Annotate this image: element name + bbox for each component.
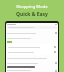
button[interactable] xyxy=(6,61,58,65)
button[interactable] xyxy=(7,66,57,68)
button[interactable] xyxy=(6,36,58,40)
button[interactable] xyxy=(7,41,57,43)
button[interactable] xyxy=(6,56,58,60)
staticText: Shopping Mode xyxy=(16,4,48,10)
button[interactable] xyxy=(6,69,58,72)
button[interactable] xyxy=(6,31,58,35)
button[interactable] xyxy=(7,26,57,29)
button[interactable] xyxy=(7,50,57,54)
button[interactable] xyxy=(7,45,57,49)
staticText: Quick & Easy xyxy=(16,11,48,18)
